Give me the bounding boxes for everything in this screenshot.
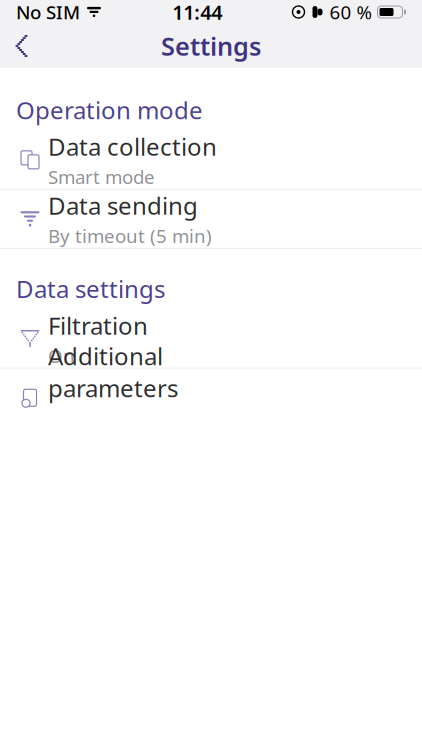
staticText: No SIM xyxy=(16,0,80,24)
staticText: 60 % xyxy=(329,0,372,24)
staticText: Data sending xyxy=(48,189,198,221)
staticText: Filtration xyxy=(48,309,148,341)
button[interactable]: Data sending xyxy=(0,190,422,249)
staticText: Data settings xyxy=(16,273,165,305)
staticText: By timeout (5 min) xyxy=(48,223,212,248)
staticText: On xyxy=(48,343,75,368)
staticText: 11:44 xyxy=(172,0,222,25)
staticText: Smart mode xyxy=(48,164,155,189)
button[interactable]: Filtration xyxy=(0,310,422,369)
button[interactable]: Back xyxy=(0,24,46,68)
button[interactable]: Additional parameters xyxy=(0,369,422,428)
staticText: Data collection xyxy=(48,130,217,162)
staticText: Settings xyxy=(161,29,261,63)
staticText: Additional parameters xyxy=(48,340,178,404)
staticText: Operation mode xyxy=(16,94,203,126)
button[interactable]: Data collection xyxy=(0,131,422,190)
